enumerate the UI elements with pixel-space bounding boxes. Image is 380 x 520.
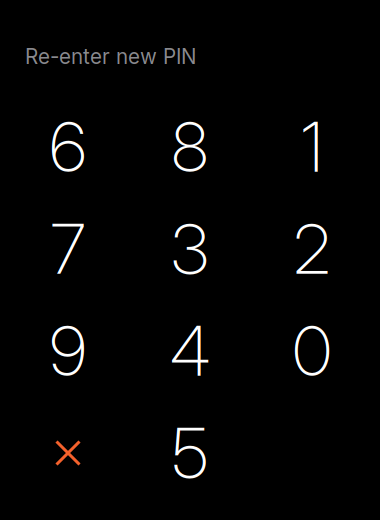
staticText: 2: [293, 208, 330, 290]
staticText: 1: [301, 106, 323, 188]
staticText: Re-enter new PIN: [25, 44, 197, 69]
button[interactable]: 8: [129, 96, 251, 198]
staticText: 5: [172, 412, 208, 494]
staticText: 0: [292, 310, 331, 392]
staticText: 6: [49, 106, 86, 188]
button[interactable]: 3: [129, 198, 251, 300]
button[interactable]: 6: [7, 96, 129, 198]
staticText: 3: [171, 208, 209, 290]
staticText: 7: [50, 208, 85, 290]
button[interactable]: 0: [251, 300, 373, 402]
button[interactable]: 5: [129, 402, 251, 504]
button[interactable]: 2: [251, 198, 373, 300]
button[interactable]: Delete: [7, 402, 129, 504]
button[interactable]: 4: [129, 300, 251, 402]
staticText: 8: [171, 106, 208, 188]
button[interactable]: 1: [251, 96, 373, 198]
staticText: 9: [49, 310, 86, 392]
staticText: 4: [170, 310, 210, 392]
button[interactable]: 9: [7, 300, 129, 402]
button[interactable]: 7: [7, 198, 129, 300]
